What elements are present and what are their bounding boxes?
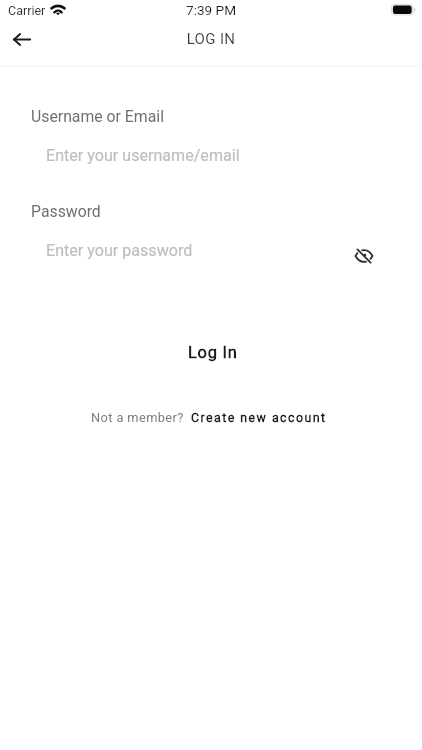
staticText: Enter your username/email — [46, 146, 240, 165]
staticText: Password — [31, 202, 101, 221]
button[interactable]: Back — [6, 23, 38, 55]
staticText: Enter your password — [46, 241, 193, 260]
button[interactable]: Enter your username/email — [31, 136, 391, 172]
button[interactable]: Enter your password — [31, 231, 341, 267]
button[interactable]: Log In — [0, 333, 422, 371]
staticText: Not a member? — [91, 410, 184, 425]
staticText: LOG IN — [0, 30, 422, 48]
staticText: 7:39 PM — [0, 2, 422, 18]
button[interactable]: Show password — [348, 240, 380, 272]
staticText: Username or Email — [31, 107, 164, 126]
staticText: Create new account — [191, 410, 327, 425]
staticText: Carrier — [8, 3, 46, 18]
staticText: Log In — [188, 343, 238, 362]
button[interactable]: Not a member? — [0, 405, 420, 429]
